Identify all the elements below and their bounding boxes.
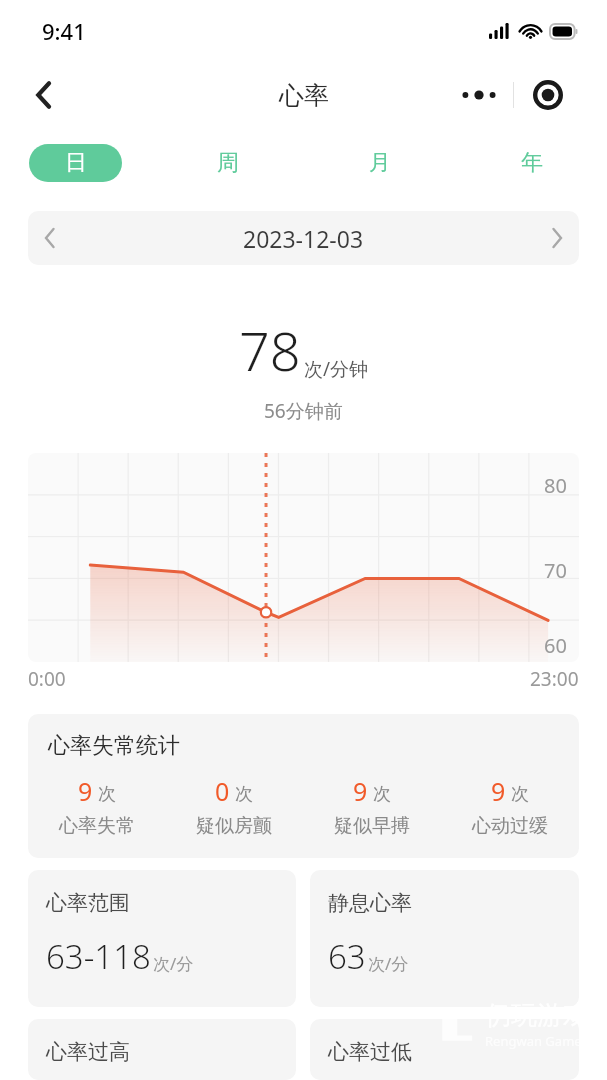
staticText: 次/分 xyxy=(368,952,409,975)
staticText: 次 xyxy=(373,783,391,806)
staticText: 60 xyxy=(544,632,567,659)
button[interactable]: 心率过高 xyxy=(28,1019,296,1080)
button[interactable]: Record xyxy=(514,70,582,120)
button[interactable]: Previous day xyxy=(28,216,72,260)
button[interactable]: Next day xyxy=(535,216,579,260)
button[interactable]: 静息心率 xyxy=(310,870,579,1007)
staticText: 心动过缓 xyxy=(472,814,548,838)
staticText: 9 xyxy=(353,774,368,808)
staticText: 9 xyxy=(491,774,506,808)
button[interactable]: 月 xyxy=(333,144,426,182)
staticText: 心率过高 xyxy=(46,1039,130,1065)
button[interactable]: 心率失常统计 xyxy=(28,714,579,858)
staticText: 70 xyxy=(544,557,567,584)
staticText: 疑似早搏 xyxy=(334,814,410,838)
staticText: 80 xyxy=(544,472,567,499)
staticText: 心率过低 xyxy=(328,1039,412,1065)
staticText: 次 xyxy=(235,783,253,806)
staticText: 9 xyxy=(78,774,93,808)
staticText: 次 xyxy=(511,783,529,806)
staticText: 次/分 xyxy=(153,952,194,975)
staticText: Rengwan Games xyxy=(485,1032,588,1050)
button[interactable]: 日 xyxy=(29,144,122,182)
staticText: 心率失常 xyxy=(59,814,135,838)
staticText: 2023-12-03 xyxy=(243,223,364,254)
staticText: 日 xyxy=(65,149,87,177)
button[interactable]: More options xyxy=(445,70,513,120)
staticText: 心率 xyxy=(279,80,329,111)
button[interactable]: 心率过低 xyxy=(310,1019,579,1080)
staticText: 次/分钟 xyxy=(304,356,369,382)
staticText: 静息心率 xyxy=(328,890,412,916)
button[interactable]: Back xyxy=(22,73,66,117)
staticText: 心率范围 xyxy=(46,890,130,916)
button[interactable]: 年 xyxy=(485,144,578,182)
staticText: 月 xyxy=(369,149,391,177)
staticText: 年 xyxy=(521,149,543,177)
staticText: 23:00 xyxy=(530,666,579,692)
staticText: 心率失常统计 xyxy=(48,732,180,760)
button[interactable]: 周 xyxy=(181,144,274,182)
staticText: 仍玩游戏 xyxy=(485,999,589,1032)
staticText: 0:00 xyxy=(28,666,66,692)
staticText: 63-118 xyxy=(46,934,151,979)
button[interactable]: Previous day xyxy=(28,211,579,265)
staticText: 56分钟前 xyxy=(264,398,343,424)
staticText: 次 xyxy=(98,783,116,806)
staticText: 9:41 xyxy=(42,16,86,46)
staticText: 疑似房颤 xyxy=(196,814,272,838)
staticText: 63 xyxy=(328,934,366,979)
staticText: 0 xyxy=(215,774,230,808)
staticText: 78 xyxy=(239,313,301,387)
button[interactable]: 心率范围 xyxy=(28,870,296,1007)
staticText: 周 xyxy=(217,149,239,177)
